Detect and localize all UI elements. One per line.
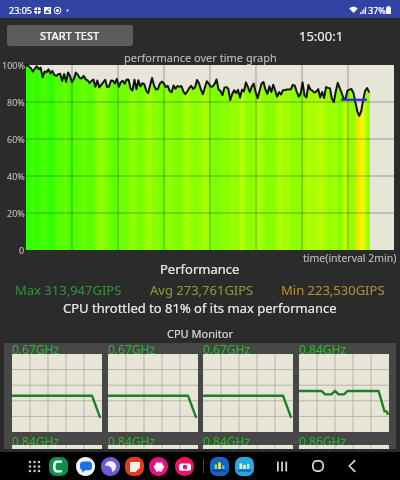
staticText: 37% bbox=[368, 4, 386, 16]
button[interactable]: START TEST bbox=[7, 25, 133, 46]
staticText: CPU Monitor bbox=[167, 326, 233, 341]
button[interactable]: Browser bbox=[97, 453, 123, 479]
staticText: CPU throttled to 81% of its max performa… bbox=[63, 299, 337, 317]
button[interactable]: Gallery bbox=[145, 453, 171, 479]
button[interactable]: Notes bbox=[121, 453, 147, 479]
staticText: 60% bbox=[7, 133, 25, 145]
button[interactable]: Home bbox=[305, 453, 331, 479]
button[interactable]: Recent apps bbox=[269, 453, 295, 479]
button[interactable]: Throttling test bbox=[231, 453, 257, 479]
button[interactable]: Camera bbox=[171, 453, 197, 479]
staticText: 40% bbox=[7, 170, 25, 182]
staticText: Max 313,947GIPS bbox=[15, 281, 122, 299]
staticText: 0.84GHz bbox=[12, 433, 60, 449]
staticText: 0.67GHz bbox=[12, 341, 60, 357]
staticText: performance over time graph bbox=[124, 50, 277, 65]
button[interactable]: Back bbox=[339, 453, 365, 479]
button[interactable]: Messages bbox=[72, 453, 98, 479]
button[interactable]: Phone bbox=[45, 453, 71, 479]
staticText: time(interval 2min) bbox=[303, 251, 397, 265]
staticText: Min 223,530GIPS bbox=[281, 281, 385, 299]
button[interactable]: Benchmark bbox=[206, 453, 232, 479]
staticText: 0.84GHz bbox=[299, 341, 347, 357]
staticText: 0.67GHz bbox=[203, 341, 251, 357]
staticText: 20% bbox=[7, 207, 25, 219]
staticText: START TEST bbox=[40, 28, 100, 43]
staticText: 0 bbox=[19, 244, 25, 256]
staticText: 0.84GHz bbox=[203, 433, 251, 449]
staticText: 0.84GHz bbox=[108, 433, 156, 449]
staticText: 80% bbox=[7, 96, 25, 108]
staticText: 0.67GHz bbox=[108, 341, 156, 357]
staticText: 100% bbox=[2, 59, 25, 71]
staticText: Avg 273,761GIPS bbox=[150, 281, 254, 299]
button[interactable]: All apps bbox=[21, 453, 47, 479]
staticText: 0.86GHz bbox=[299, 433, 347, 449]
staticText: 15:00:1 bbox=[299, 27, 344, 45]
staticText: 23:05 bbox=[9, 4, 33, 16]
staticText: Performance bbox=[160, 260, 240, 278]
